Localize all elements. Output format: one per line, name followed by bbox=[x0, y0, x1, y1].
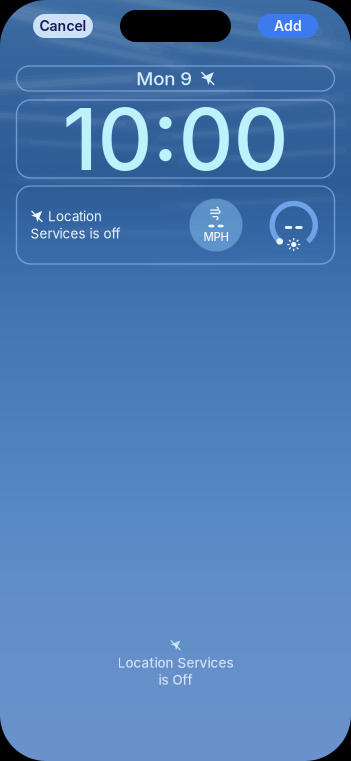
button[interactable]: Cancel bbox=[33, 14, 93, 38]
staticText: Add bbox=[274, 17, 302, 34]
staticText: Services is off bbox=[30, 225, 120, 242]
staticText: MPH bbox=[203, 230, 228, 244]
button[interactable]: Mon 9 bbox=[16, 66, 334, 91]
staticText: Location Services bbox=[117, 655, 233, 671]
staticText: Location bbox=[48, 208, 102, 224]
button[interactable]: 10:00 bbox=[16, 100, 334, 178]
staticText: 10:00 bbox=[62, 87, 288, 191]
staticText: is Off bbox=[158, 672, 192, 688]
staticText: Cancel bbox=[39, 17, 86, 34]
button[interactable]: Location bbox=[16, 186, 334, 264]
button[interactable]: Add bbox=[258, 14, 318, 38]
staticText: Mon 9 bbox=[136, 67, 192, 90]
